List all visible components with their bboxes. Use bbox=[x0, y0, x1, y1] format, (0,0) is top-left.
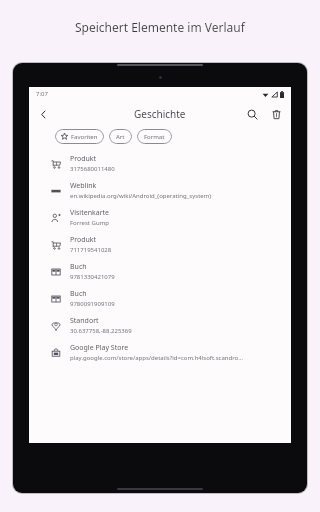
button[interactable]: Art bbox=[109, 129, 132, 144]
staticText: Standort bbox=[70, 316, 99, 326]
staticText: en.wikipedia.org/wiki/Android_(operating… bbox=[70, 192, 212, 200]
button[interactable]: Google Play Store bbox=[29, 339, 291, 366]
button[interactable]: Back bbox=[33, 104, 53, 124]
staticText: 9780091909109 bbox=[70, 300, 115, 308]
button[interactable]: Delete bbox=[266, 104, 286, 124]
staticText: Forrest Gump bbox=[70, 219, 109, 227]
staticText: play.google.com/store/apps/details?id=co… bbox=[70, 354, 243, 362]
staticText: Format bbox=[144, 133, 165, 141]
staticText: 7:07 bbox=[36, 90, 48, 98]
staticText: Produkt bbox=[70, 235, 97, 245]
staticText: Buch bbox=[70, 262, 87, 272]
button[interactable]: Weblink bbox=[29, 177, 291, 204]
staticText: 3175680011480 bbox=[70, 165, 115, 173]
button[interactable]: Favoriten bbox=[55, 129, 104, 144]
button[interactable]: Buch bbox=[29, 258, 291, 285]
staticText: Produkt bbox=[70, 154, 97, 164]
staticText: Geschichte bbox=[134, 107, 186, 121]
button[interactable]: Produkt bbox=[29, 150, 291, 177]
staticText: Weblink bbox=[70, 181, 97, 191]
button[interactable]: Format bbox=[137, 129, 172, 144]
staticText: 30.637758,-88.225369 bbox=[70, 327, 132, 335]
staticText: 711719541028 bbox=[70, 246, 112, 254]
staticText: Favoriten bbox=[71, 133, 98, 141]
staticText: 9781330421079 bbox=[70, 273, 115, 281]
staticText: Visitenkarte bbox=[70, 208, 109, 218]
button[interactable]: Buch bbox=[29, 285, 291, 312]
button[interactable]: Visitenkarte bbox=[29, 204, 291, 231]
staticText: Buch bbox=[70, 289, 87, 299]
button[interactable]: Standort bbox=[29, 312, 291, 339]
button[interactable]: Search bbox=[242, 104, 262, 124]
button[interactable]: Produkt bbox=[29, 231, 291, 258]
staticText: Speichert Elemente im Verlauf bbox=[75, 19, 245, 35]
staticText: Google Play Store bbox=[70, 343, 129, 353]
staticText: Art bbox=[116, 133, 125, 141]
